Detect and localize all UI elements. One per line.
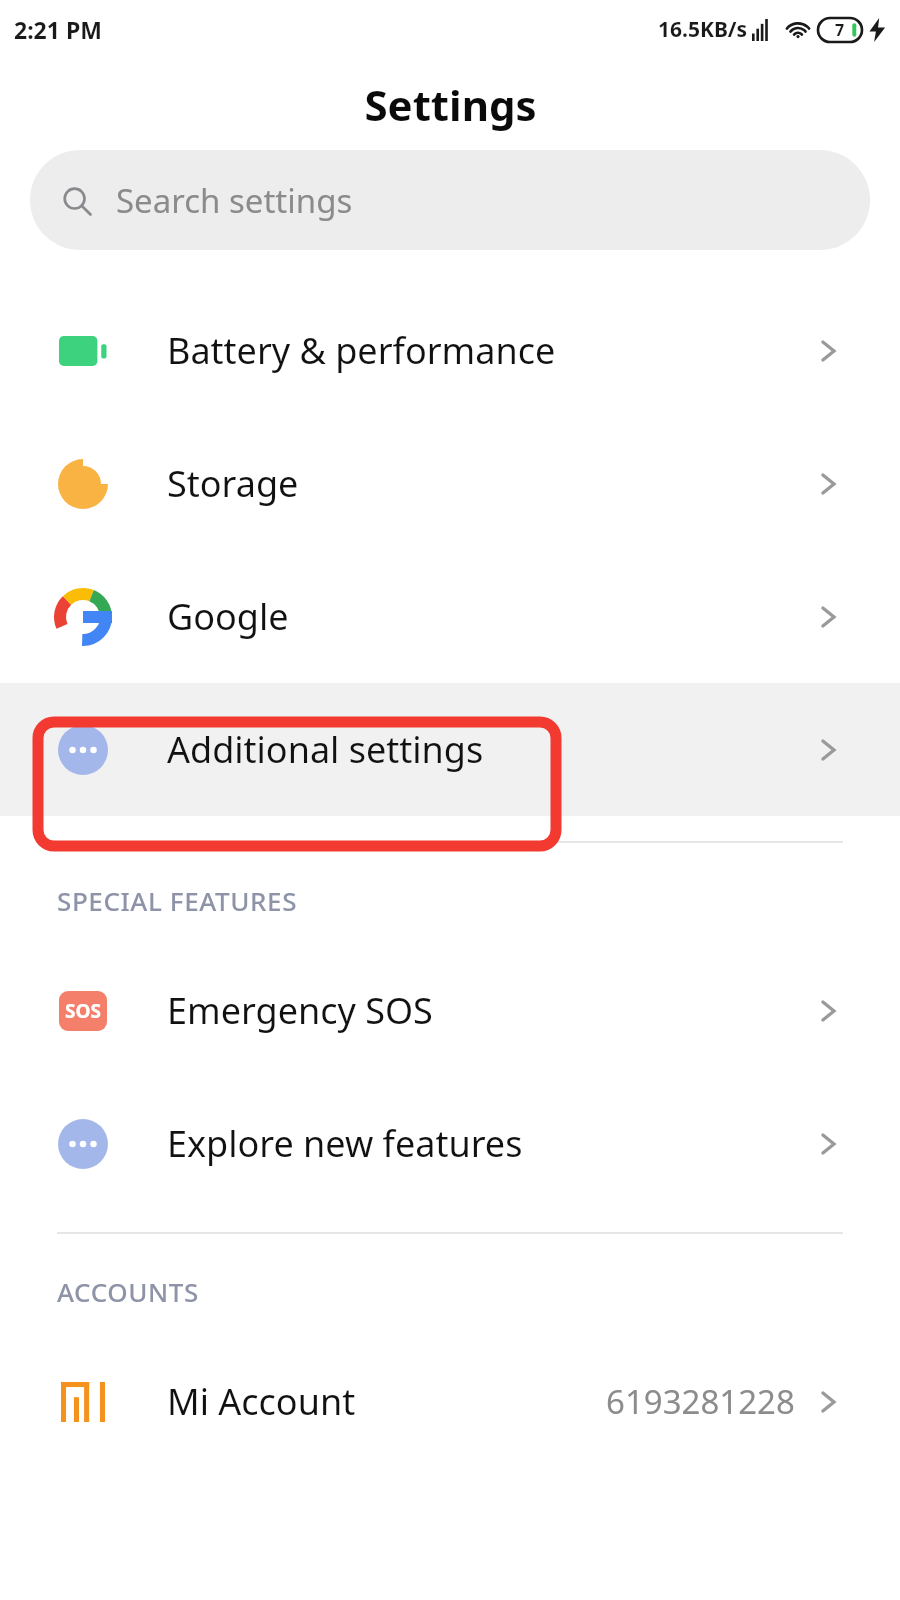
button[interactable]: Mi Account <box>0 1335 900 1468</box>
staticText: Emergency SOS <box>167 986 433 1035</box>
staticText: Battery & performance <box>167 326 556 375</box>
staticText: Additional settings <box>167 725 484 774</box>
button[interactable]: Google <box>0 550 900 683</box>
staticText: Explore new features <box>167 1119 523 1168</box>
button[interactable]: Search settings <box>30 150 870 250</box>
staticText: Mi Account <box>167 1377 356 1426</box>
button[interactable]: Explore new features <box>0 1077 900 1210</box>
staticText: 16.5KB/s <box>658 15 748 44</box>
staticText: Storage <box>167 459 299 508</box>
button[interactable]: Additional settings <box>0 683 900 816</box>
staticText: SPECIAL FEATURES <box>57 883 298 918</box>
button[interactable]: Battery & performance <box>0 284 900 417</box>
button[interactable]: Storage <box>0 417 900 550</box>
staticText: Search settings <box>116 178 353 223</box>
staticText: 7 <box>835 19 845 41</box>
staticText: Google <box>167 592 289 641</box>
button[interactable]: SOS <box>0 944 900 1077</box>
staticText: 2:21 PM <box>14 14 102 45</box>
staticText: Settings <box>364 76 537 133</box>
staticText: SOS <box>65 998 101 1024</box>
staticText: 6193281228 <box>606 1379 795 1424</box>
staticText: ACCOUNTS <box>57 1274 199 1309</box>
